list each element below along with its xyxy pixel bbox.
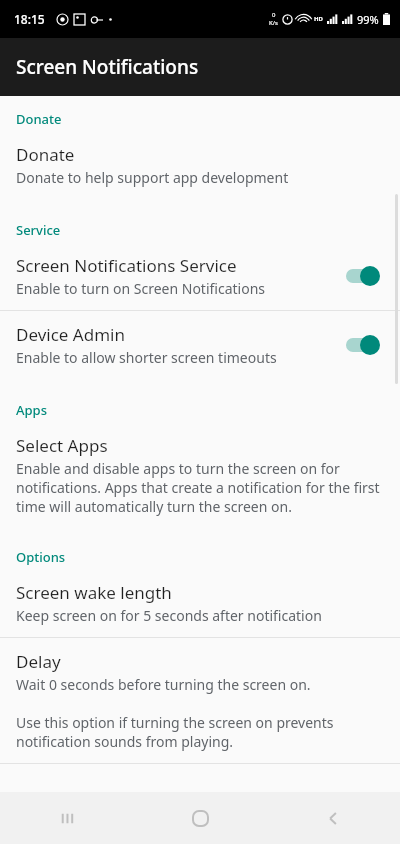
staticText: Enable and disable apps to turn the scre… — [16, 459, 386, 516]
staticText: HD — [314, 15, 323, 23]
staticText: Options — [16, 548, 66, 566]
staticText: K/s — [269, 19, 278, 27]
staticText: Screen Notifications Service — [16, 254, 237, 277]
button[interactable]: Screen wake length — [0, 569, 400, 637]
staticText: Select Apps — [16, 434, 108, 457]
button[interactable]: Toggle setting — [342, 332, 386, 358]
staticText: Apps — [16, 401, 47, 419]
staticText: Enable to allow shorter screen timeouts — [16, 348, 277, 367]
button[interactable]: Home — [134, 792, 267, 844]
staticText: Wait 0 seconds before turning the screen… — [16, 675, 386, 751]
staticText: Donate — [16, 143, 75, 166]
staticText: Donate to help support app development — [16, 168, 289, 187]
button[interactable]: Back — [267, 792, 400, 844]
staticText: Service — [16, 221, 61, 239]
button[interactable]: Delay — [0, 638, 400, 763]
staticText: Delay — [16, 650, 61, 673]
staticText: Keep screen on for 5 seconds after notif… — [16, 606, 322, 625]
button[interactable]: Device Admin — [0, 311, 400, 379]
staticText: 0 — [272, 11, 276, 19]
button[interactable]: Screen Notifications Service — [0, 242, 400, 310]
button[interactable]: Donate — [0, 131, 400, 199]
staticText: Enable to turn on Screen Notifications — [16, 279, 266, 298]
staticText: Screen wake length — [16, 581, 172, 604]
button[interactable]: Select Apps — [0, 422, 400, 528]
staticText: 18:15 — [14, 11, 45, 27]
staticText: Screen Notifications — [16, 54, 199, 80]
staticText: Device Admin — [16, 323, 125, 346]
button[interactable]: Toggle setting — [342, 263, 386, 289]
staticText: Donate — [16, 110, 62, 128]
button[interactable]: Recents — [0, 792, 134, 844]
staticText: 99% — [357, 12, 379, 27]
